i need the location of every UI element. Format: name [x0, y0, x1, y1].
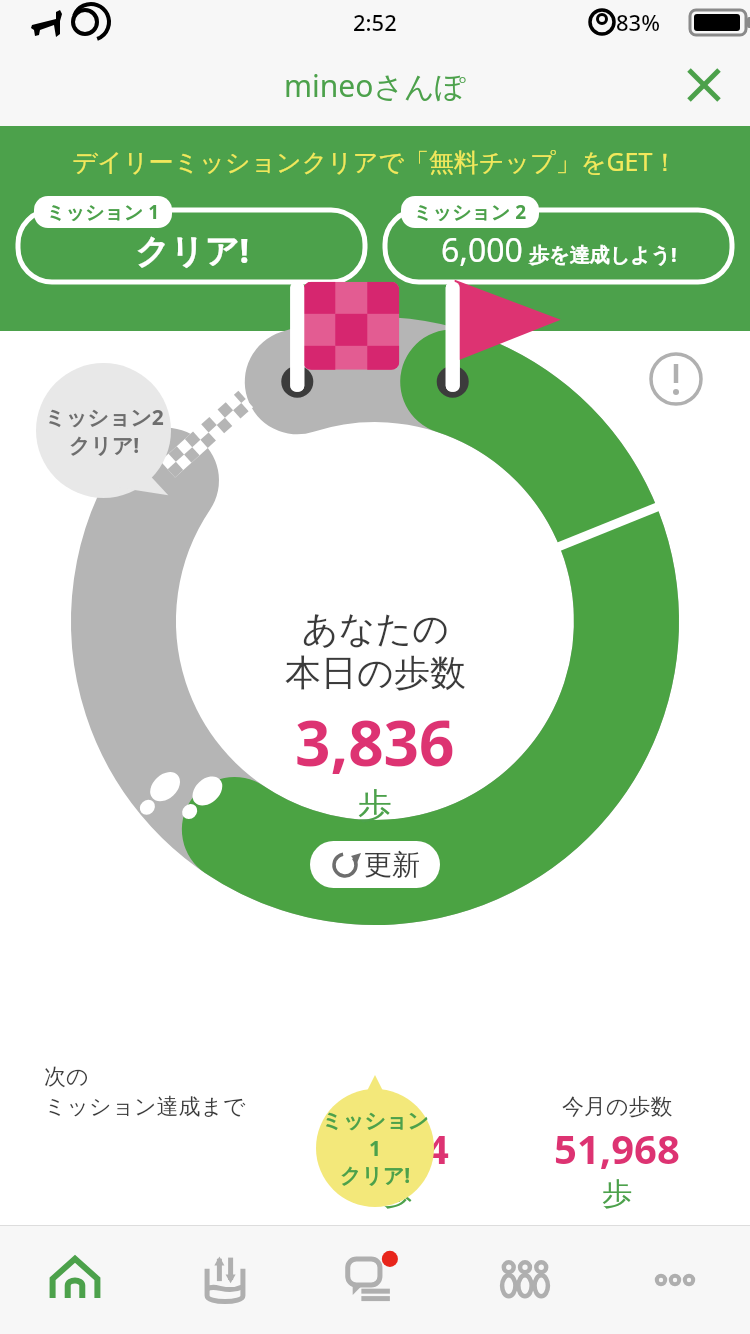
staticText: 2,164	[346, 1121, 449, 1175]
staticText: 今月の歩数	[562, 1093, 673, 1121]
button[interactable]: Close	[674, 55, 734, 115]
button[interactable]: Messages	[300, 1226, 450, 1334]
staticText: 歩を達成しよう!	[529, 241, 677, 268]
staticText: ミッション1 クリア!	[316, 1108, 434, 1189]
staticText: 次の ミッション達成まで	[44, 1063, 246, 1121]
staticText: 歩	[358, 784, 392, 827]
staticText: ミッション 2	[413, 199, 527, 225]
staticText: 歩	[602, 1175, 632, 1213]
staticText: 歩	[383, 1175, 413, 1213]
staticText: 3,836	[295, 700, 455, 784]
staticText: あなたの 本日の歩数	[285, 606, 466, 696]
button[interactable]: More	[600, 1226, 750, 1334]
staticText: mineoさんぽ	[284, 65, 466, 106]
staticText: ミッション2 クリア!	[44, 403, 164, 459]
button[interactable]: 6,000	[383, 196, 734, 284]
button[interactable]: Home	[0, 1226, 150, 1334]
button[interactable]: 更新	[310, 841, 440, 888]
button[interactable]: Information	[646, 349, 706, 409]
staticText: 2:52	[353, 7, 397, 37]
staticText: 51,968	[554, 1121, 680, 1175]
staticText: デイリーミッションクリアで「無料チップ」をGET！	[72, 144, 678, 178]
staticText: クリア!	[135, 227, 249, 273]
staticText: 83%	[616, 7, 660, 37]
staticText: ミッション 1	[46, 199, 160, 225]
button[interactable]: Data usage	[150, 1226, 300, 1334]
staticText: 6,000	[441, 228, 523, 272]
button[interactable]: Community	[450, 1226, 600, 1334]
staticText: 更新	[364, 847, 420, 882]
button[interactable]: クリア!	[16, 196, 367, 284]
